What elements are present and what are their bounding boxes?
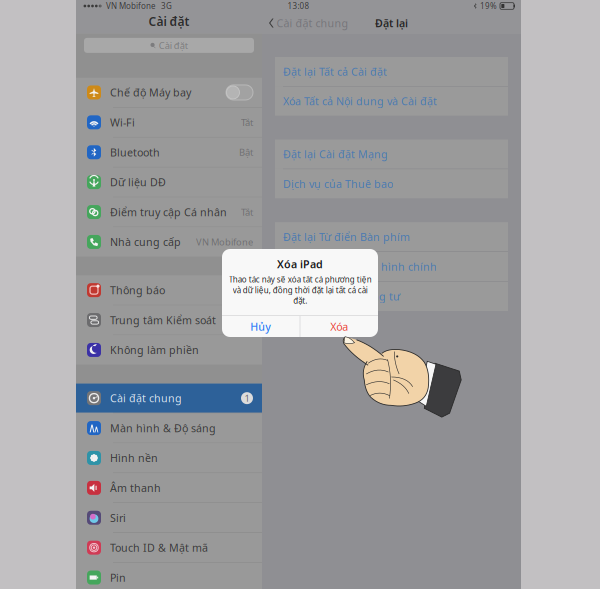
- button[interactable]: Đặt lại Vị trí & Riêng tư: [275, 282, 508, 311]
- button[interactable]: Âm thanh: [76, 473, 262, 502]
- staticText: Âm thanh: [110, 481, 161, 495]
- button[interactable]: Dịch vụ của Thuê bao: [275, 169, 508, 198]
- button[interactable]: Đặt lại Bố cục Màn hình chính: [275, 252, 508, 281]
- button[interactable]: Pin: [76, 563, 262, 589]
- staticText: Xóa iPad: [277, 257, 323, 271]
- staticText: Cài đặt: [159, 39, 188, 52]
- button[interactable]: Wi-Fi: [76, 108, 262, 137]
- staticText: Dịch vụ của Thuê bao: [283, 177, 393, 191]
- staticText: Nhà cung cấp: [110, 235, 181, 249]
- staticText: Đặt lại: [375, 16, 408, 30]
- staticText: Xóa: [330, 319, 348, 334]
- button[interactable]: Thông báo: [76, 275, 262, 305]
- staticText: Cài đặt chung: [110, 391, 182, 405]
- staticText: Trung tâm Kiểm soát: [110, 313, 216, 327]
- staticText: Tắt: [241, 206, 253, 218]
- staticText: VN Mobifone: [196, 236, 253, 248]
- staticText: 1: [244, 392, 249, 404]
- button[interactable]: Cài đặt chung: [76, 383, 262, 413]
- staticText: 3G: [161, 1, 172, 11]
- button[interactable]: Đặt lại Cài đặt Mạng: [275, 140, 508, 169]
- staticText: Không làm phiền: [110, 343, 199, 357]
- button[interactable]: Trung tâm Kiểm soát: [76, 305, 262, 335]
- staticText: Điểm truy cập Cá nhân: [110, 205, 227, 219]
- staticText: Màn hình & Độ sáng: [110, 421, 216, 435]
- staticText: Đặt lại Cài đặt Mạng: [283, 147, 388, 161]
- button[interactable]: Nhà cung cấp: [76, 227, 262, 256]
- staticText: Wi-Fi: [110, 115, 135, 129]
- button[interactable]: Màn hình & Độ sáng: [76, 413, 262, 443]
- button[interactable]: Bluetooth: [76, 138, 262, 167]
- staticText: Bật: [239, 146, 253, 158]
- button[interactable]: Hình nền: [76, 443, 262, 472]
- button[interactable]: Siri: [76, 503, 262, 532]
- button[interactable]: Touch ID & Mật mã: [76, 533, 262, 562]
- staticText: Đặt lại Bố cục Màn hình chính: [283, 259, 437, 274]
- staticText: Dữ liệu DĐ: [110, 175, 166, 189]
- staticText: Đặt lại Vị trí & Riêng tư: [283, 289, 400, 303]
- staticText: Pin: [110, 570, 126, 585]
- button[interactable]: Hủy: [222, 316, 300, 337]
- staticText: Bluetooth: [110, 145, 160, 159]
- button[interactable]: Cài đặt chung: [262, 12, 349, 34]
- staticText: Cài đặt: [148, 13, 189, 29]
- staticText: VN Mobifone: [106, 1, 156, 11]
- staticText: Tắt: [241, 116, 253, 129]
- button[interactable]: Chế độ Máy bay: [76, 78, 262, 107]
- staticText: Đặt lại Tất cả Cài đặt: [283, 64, 387, 79]
- button[interactable]: Dữ liệu DĐ: [76, 167, 262, 197]
- staticText: Hủy: [250, 319, 271, 334]
- staticText: Chế độ Máy bay: [110, 85, 191, 100]
- staticText: Xóa Tất cả Nội dung và Cài đặt: [283, 94, 437, 108]
- staticText: Đặt lại Từ điển Bàn phím: [283, 230, 410, 244]
- staticText: Cài đặt chung: [277, 16, 349, 30]
- button[interactable]: Xóa: [300, 316, 378, 337]
- button[interactable]: Điểm truy cập Cá nhân: [76, 197, 262, 227]
- staticText: 13:08: [287, 1, 309, 11]
- staticText: Thông báo: [110, 283, 165, 297]
- button[interactable]: Đặt lại Tất cả Cài đặt: [275, 57, 508, 86]
- staticText: Siri: [110, 511, 126, 525]
- button[interactable]: Không làm phiền: [76, 335, 262, 364]
- staticText: Hình nền: [110, 451, 158, 465]
- staticText: Thao tác này sẽ xóa tất cả phương tiện v…: [228, 274, 371, 306]
- staticText: 19%: [480, 1, 497, 11]
- button[interactable]: Đặt lại Từ điển Bàn phím: [275, 222, 508, 251]
- staticText: Touch ID & Mật mã: [110, 541, 208, 555]
- button[interactable]: Xóa Tất cả Nội dung và Cài đặt: [275, 87, 508, 116]
